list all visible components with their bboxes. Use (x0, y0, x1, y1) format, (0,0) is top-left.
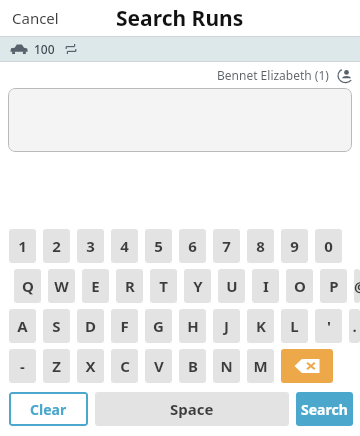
staticText: D (85, 316, 96, 336)
button[interactable]: F (111, 309, 138, 343)
staticText: - (20, 356, 25, 376)
button[interactable]: X (77, 349, 104, 383)
button[interactable]: P (320, 269, 347, 303)
button[interactable] (8, 88, 352, 152)
staticText: Clear (30, 400, 67, 419)
button[interactable]: Clear (9, 392, 88, 426)
staticText: Y (193, 276, 203, 296)
staticText: 9 (290, 236, 299, 256)
button[interactable]: N (213, 349, 240, 383)
button[interactable]: 8 (247, 229, 274, 263)
button[interactable]: O (286, 269, 313, 303)
button[interactable]: S (43, 309, 70, 343)
button[interactable]: Q (14, 269, 41, 303)
staticText: H (187, 316, 199, 336)
staticText: S (52, 316, 61, 336)
button[interactable]: K (247, 309, 274, 343)
button[interactable]: C (111, 349, 138, 383)
button[interactable]: J (213, 309, 240, 343)
staticText: V (154, 356, 164, 376)
button[interactable]: Search (296, 392, 353, 426)
staticText: A (17, 316, 28, 336)
staticText: F (120, 316, 129, 336)
button[interactable]: M (247, 349, 274, 383)
button[interactable]: 3 (77, 229, 104, 263)
button[interactable]: 0 (315, 229, 342, 263)
button[interactable]: 1 (9, 229, 36, 263)
button[interactable]: 9 (281, 229, 308, 263)
button[interactable]: A (9, 309, 36, 343)
button[interactable]: T (150, 269, 177, 303)
button[interactable]: . (349, 309, 360, 343)
staticText: Space (170, 399, 214, 419)
staticText: 5 (154, 236, 163, 256)
button[interactable]: Cancel (4, 4, 67, 32)
staticText: 6 (188, 236, 197, 256)
staticText: Z (52, 356, 61, 376)
button[interactable]: L (281, 309, 308, 343)
button[interactable]: 7 (213, 229, 240, 263)
staticText: Search (301, 400, 348, 419)
staticText: P (329, 276, 339, 296)
staticText: I (263, 276, 269, 296)
staticText: 0 (324, 236, 333, 256)
button[interactable]: 4 (111, 229, 138, 263)
button[interactable]: W (48, 269, 75, 303)
staticText: @ (354, 276, 360, 296)
button[interactable]: Backspace (281, 349, 333, 383)
staticText: K (256, 316, 266, 336)
staticText: N (220, 356, 233, 376)
button[interactable]: @ (354, 269, 360, 303)
button[interactable]: ' (315, 309, 342, 343)
staticText: W (54, 276, 69, 296)
other: Change user (337, 67, 354, 84)
staticText: 1 (18, 236, 27, 256)
staticText: 4 (120, 236, 129, 256)
other: Vehicle (10, 43, 28, 55)
staticText: M (253, 356, 268, 376)
staticText: B (188, 356, 198, 376)
staticText: 3 (86, 236, 95, 256)
staticText: T (159, 276, 168, 296)
button[interactable]: Z (43, 349, 70, 383)
staticText: O (294, 276, 306, 296)
button[interactable]: - (9, 349, 36, 383)
staticText: 2 (52, 236, 61, 256)
staticText: L (290, 316, 299, 336)
button[interactable]: Bennet Elizabeth (1) (0, 62, 360, 88)
staticText: G (153, 316, 164, 336)
button[interactable]: E (82, 269, 109, 303)
staticText: E (91, 276, 100, 296)
staticText: 8 (256, 236, 265, 256)
button[interactable]: Y (184, 269, 211, 303)
button[interactable]: I (252, 269, 279, 303)
button[interactable]: B (179, 349, 206, 383)
button[interactable]: G (145, 309, 172, 343)
staticText: . (352, 316, 357, 336)
staticText: U (226, 276, 238, 296)
button[interactable]: 6 (179, 229, 206, 263)
staticText: Bennet Elizabeth (1) (217, 67, 329, 83)
other: Swap (65, 43, 77, 55)
staticText: ' (327, 316, 331, 336)
button[interactable]: H (179, 309, 206, 343)
button[interactable]: R (116, 269, 143, 303)
button[interactable]: V (145, 349, 172, 383)
button[interactable]: Vehicle (0, 37, 360, 61)
button[interactable]: Space (95, 392, 289, 426)
button[interactable]: D (77, 309, 104, 343)
staticText: Q (22, 276, 34, 296)
staticText: R (125, 276, 135, 296)
button[interactable]: U (218, 269, 245, 303)
staticText: Cancel (12, 8, 59, 28)
button[interactable]: 5 (145, 229, 172, 263)
staticText: C (120, 356, 130, 376)
staticText: Search Runs (116, 4, 244, 33)
staticText: J (224, 316, 229, 336)
staticText: 7 (222, 236, 231, 256)
staticText: X (85, 356, 96, 376)
button[interactable]: 2 (43, 229, 70, 263)
staticText: 100 (34, 41, 55, 57)
